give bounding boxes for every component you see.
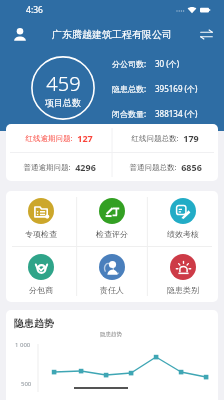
staticText: 检查评分 xyxy=(96,229,128,239)
staticText: 隐患总数: xyxy=(112,83,150,94)
staticText: 6856 xyxy=(181,161,202,173)
staticText: 隐患趋势 xyxy=(100,331,122,338)
button[interactable]: 责任人 xyxy=(76,246,147,302)
staticText: 分公司数: xyxy=(112,58,150,69)
staticText: 隐患类别 xyxy=(167,285,199,295)
staticText: 179 xyxy=(183,132,199,144)
button[interactable]: Account xyxy=(8,22,32,46)
button[interactable]: 普通逾期问题: xyxy=(6,152,112,181)
staticText: 4296 xyxy=(75,161,96,173)
staticText: 普通逾期问题: xyxy=(23,162,71,172)
button[interactable]: 分包商 xyxy=(6,246,76,302)
button[interactable]: 绩效考核 xyxy=(147,191,218,246)
staticText: 闭合数量: xyxy=(112,108,150,119)
staticText: 红线逾期问题: xyxy=(25,133,73,143)
staticText: 388134 (个) xyxy=(155,108,198,119)
button[interactable]: 专项检查 xyxy=(6,191,76,246)
staticText: 广东腾越建筑工程有限公司 xyxy=(52,28,172,41)
staticText: 责任人 xyxy=(100,285,124,295)
button[interactable]: 红线问题总数: xyxy=(112,124,218,152)
staticText: 分包商 xyxy=(29,285,53,295)
button[interactable]: 检查评分 xyxy=(76,191,147,246)
staticText: 红线问题总数: xyxy=(131,133,179,143)
staticText: 395169 (个) xyxy=(155,83,198,94)
staticText: 1 000 xyxy=(15,341,31,349)
button[interactable]: Switch company xyxy=(195,23,217,45)
staticText: 专项检查 xyxy=(25,229,57,239)
staticText: 普通问题总数: xyxy=(129,162,177,172)
staticText: 500 xyxy=(21,380,32,388)
staticText: 隐患趋势 xyxy=(14,317,54,330)
button[interactable]: 普通问题总数: xyxy=(112,152,218,181)
staticText: 127 xyxy=(77,132,93,144)
staticText: 30 (个) xyxy=(155,58,180,69)
staticText: 4:36 xyxy=(26,4,43,16)
button[interactable]: 红线逾期问题: xyxy=(6,124,112,152)
staticText: 项目总数 xyxy=(45,97,81,108)
staticText: 459 xyxy=(46,70,81,97)
staticText: 绩效考核 xyxy=(167,229,199,239)
button[interactable]: 隐患类别 xyxy=(147,246,218,302)
